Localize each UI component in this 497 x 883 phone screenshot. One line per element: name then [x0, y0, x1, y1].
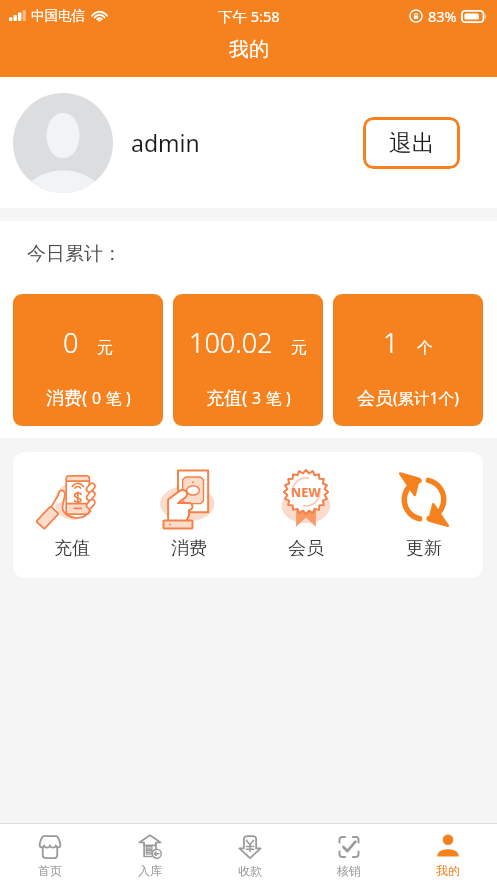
- button[interactable]: 核销: [299, 824, 398, 883]
- staticText: admin: [131, 127, 200, 158]
- button[interactable]: NEW: [247, 452, 365, 578]
- staticText: 消费: [171, 537, 207, 560]
- button[interactable]: 我的: [398, 824, 497, 883]
- staticText: 我的: [436, 863, 460, 878]
- staticText: NEW: [291, 484, 321, 501]
- staticText: 充值(: [206, 385, 248, 410]
- staticText: 入库: [138, 863, 162, 878]
- staticText: 3: [248, 387, 266, 409]
- button[interactable]: 首页: [0, 824, 100, 883]
- staticText: 会员: [288, 537, 324, 560]
- staticText: 元: [291, 338, 307, 358]
- staticText: 退出: [389, 129, 435, 158]
- staticText: 元: [97, 338, 113, 358]
- staticText: 我的: [229, 37, 269, 62]
- staticText: 1: [383, 324, 399, 361]
- staticText: 首页: [38, 863, 62, 878]
- staticText: 消费(: [46, 385, 88, 410]
- button[interactable]: 更新: [365, 452, 483, 578]
- staticText: 个: [417, 338, 433, 358]
- button[interactable]: 退出: [363, 117, 460, 169]
- button[interactable]: 0: [13, 294, 163, 426]
- button[interactable]: 充值: [13, 452, 130, 578]
- button[interactable]: 消费: [130, 452, 247, 578]
- staticText: 更新: [406, 537, 442, 560]
- staticText: 会员: [357, 387, 393, 410]
- staticText: 笔 ): [266, 387, 291, 409]
- staticText: 100.02: [189, 324, 273, 361]
- staticText: 收款: [238, 863, 262, 878]
- staticText: 0: [88, 387, 106, 409]
- staticText: 核销: [337, 863, 361, 878]
- staticText: 今日累计：: [27, 242, 122, 266]
- button[interactable]: 入库: [100, 824, 200, 883]
- staticText: 中国电信: [31, 7, 85, 24]
- staticText: 下午 5:58: [218, 6, 280, 26]
- button[interactable]: 100.02: [173, 294, 323, 426]
- button[interactable]: 1: [333, 294, 483, 426]
- button[interactable]: 收款: [200, 824, 299, 883]
- staticText: 0: [63, 324, 79, 361]
- staticText: (累计1个): [393, 387, 460, 409]
- staticText: 83%: [428, 6, 457, 26]
- staticText: 笔 ): [106, 387, 131, 409]
- staticText: 充值: [54, 537, 90, 560]
